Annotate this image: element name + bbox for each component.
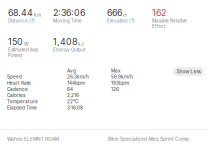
staticText: kJ <box>78 41 84 47</box>
staticText: km <box>34 12 41 18</box>
staticText: Max <box>111 68 121 74</box>
button[interactable]: Show Less <box>173 67 204 76</box>
staticText: 1,408 <box>53 36 77 47</box>
staticText: 666 <box>107 7 122 18</box>
staticText: Distance (?) <box>8 18 35 23</box>
staticText: Speed <box>7 74 22 80</box>
staticText: Cadence <box>7 86 28 92</box>
staticText: Energy Output <box>53 47 85 52</box>
staticText: W <box>24 41 29 47</box>
staticText: 3:16:08 <box>67 105 83 111</box>
staticText: 162 <box>152 7 166 18</box>
staticText: Bike: Specialized Allez Sprint Comp <box>108 136 189 142</box>
staticText: Heart Rate <box>7 80 31 86</box>
staticText: 126 <box>111 86 119 92</box>
staticText: Elevation (?) <box>107 18 135 23</box>
staticText: Massive Relative Effort <box>152 18 187 29</box>
staticText: Estimated Avg Power <box>8 47 38 58</box>
staticText: Wahoo ELEMNT ROAM <box>7 136 59 142</box>
staticText: 193bpm <box>111 80 129 86</box>
staticText: 56.9km/h <box>111 74 133 80</box>
staticText: Calories <box>7 93 25 98</box>
staticText: 64 <box>67 86 73 92</box>
staticText: 68.44 <box>8 7 33 18</box>
staticText: 144bpm <box>67 80 85 86</box>
staticText: 2,216 <box>67 93 79 98</box>
staticText: Temperature <box>7 99 38 104</box>
staticText: Avg <box>67 68 76 74</box>
staticText: 26.3km/h <box>67 74 89 80</box>
staticText: m <box>123 12 127 18</box>
staticText: 2:36:06 <box>53 7 85 18</box>
staticText: Moving Time <box>53 18 82 23</box>
staticText: 22°C <box>67 99 78 104</box>
staticText: Elapsed Time <box>7 105 37 111</box>
staticText: Show Less <box>176 69 200 74</box>
staticText: 150 <box>8 36 23 47</box>
